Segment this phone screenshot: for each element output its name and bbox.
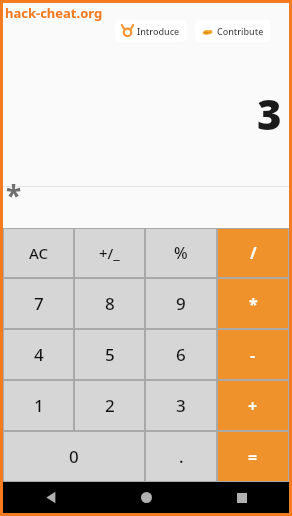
button[interactable]: Home bbox=[99, 482, 194, 513]
staticText: - bbox=[250, 344, 256, 366]
button[interactable]: 6 bbox=[146, 330, 216, 379]
button[interactable]: 2 bbox=[75, 381, 144, 430]
button[interactable]: 1 bbox=[4, 381, 73, 430]
button[interactable]: = bbox=[218, 432, 288, 481]
button[interactable]: - bbox=[218, 330, 288, 379]
staticText: . bbox=[179, 445, 184, 468]
button[interactable]: 5 bbox=[75, 330, 144, 379]
staticText: + bbox=[248, 395, 258, 417]
staticText: Introduce bbox=[137, 25, 180, 37]
button[interactable]: * bbox=[218, 279, 288, 328]
button[interactable]: % bbox=[146, 229, 216, 277]
button[interactable]: . bbox=[146, 432, 216, 481]
staticText: 0 bbox=[69, 445, 79, 468]
staticText: hack-cheat.org bbox=[5, 4, 103, 22]
staticText: 6 bbox=[176, 343, 186, 366]
button[interactable]: Contribute bbox=[195, 20, 271, 42]
staticText: 3 bbox=[176, 394, 186, 417]
button[interactable]: 3 bbox=[146, 381, 216, 430]
button[interactable]: AC bbox=[4, 229, 73, 277]
staticText: 4 bbox=[34, 343, 44, 366]
staticText: +/_ bbox=[99, 243, 120, 263]
staticText: % bbox=[174, 242, 188, 264]
button[interactable]: 8 bbox=[75, 279, 144, 328]
staticText: Contribute bbox=[217, 25, 264, 37]
button[interactable]: 7 bbox=[4, 279, 73, 328]
button[interactable]: Back bbox=[3, 482, 99, 513]
button[interactable]: Introduce bbox=[115, 20, 187, 42]
staticText: 8 bbox=[105, 292, 115, 315]
button[interactable]: +/_ bbox=[75, 229, 144, 277]
staticText: * bbox=[249, 293, 258, 315]
staticText: 3 bbox=[257, 85, 282, 142]
button[interactable]: 0 bbox=[4, 432, 144, 481]
button[interactable]: / bbox=[218, 229, 288, 277]
button[interactable]: Recent apps bbox=[194, 482, 289, 513]
staticText: AC bbox=[29, 243, 49, 263]
button[interactable]: 9 bbox=[146, 279, 216, 328]
staticText: 9 bbox=[176, 292, 186, 315]
button[interactable]: + bbox=[218, 381, 288, 430]
staticText: 7 bbox=[34, 292, 44, 315]
staticText: 1 bbox=[34, 394, 44, 417]
staticText: 5 bbox=[105, 343, 115, 366]
staticText: * bbox=[6, 176, 22, 214]
staticText: / bbox=[250, 242, 257, 264]
staticText: = bbox=[248, 446, 258, 468]
button[interactable]: 4 bbox=[4, 330, 73, 379]
staticText: 2 bbox=[105, 394, 115, 417]
